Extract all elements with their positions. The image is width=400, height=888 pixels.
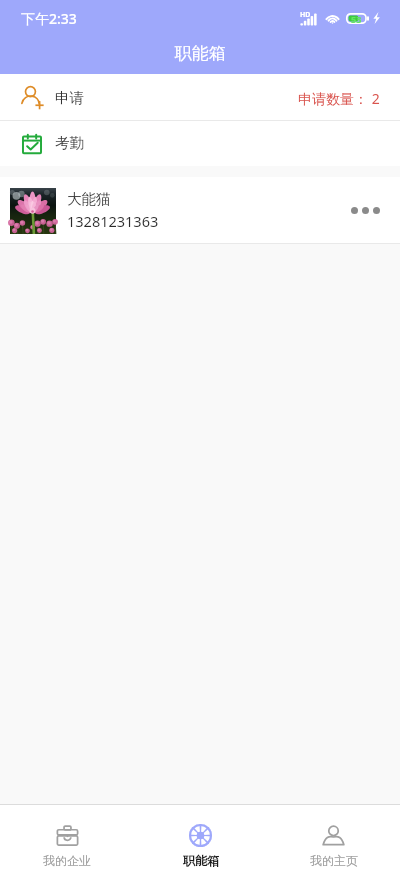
button[interactable]: 大能猫	[0, 177, 400, 243]
staticText: 13281231363	[67, 211, 159, 231]
button[interactable]: More options	[347, 199, 384, 222]
button[interactable]: 考勤	[0, 121, 400, 166]
staticText: 下午2:33	[21, 9, 77, 28]
staticText: 职能箱	[183, 853, 219, 868]
staticText: 大能猫	[67, 190, 111, 208]
button[interactable]: 我的主页	[267, 805, 400, 888]
button[interactable]: 我的企业	[0, 805, 134, 888]
staticText: 考勤	[55, 134, 84, 152]
staticText: 我的企业	[43, 853, 91, 868]
staticText: HD	[300, 10, 311, 20]
button[interactable]: 职能箱	[134, 805, 267, 888]
staticText: 53	[351, 13, 362, 24]
button[interactable]: 申请	[0, 74, 400, 120]
staticText: 我的主页	[310, 853, 358, 868]
staticText: 职能箱	[175, 43, 226, 64]
staticText: 申请数量： 2	[298, 89, 380, 108]
staticText: 申请	[55, 89, 84, 107]
